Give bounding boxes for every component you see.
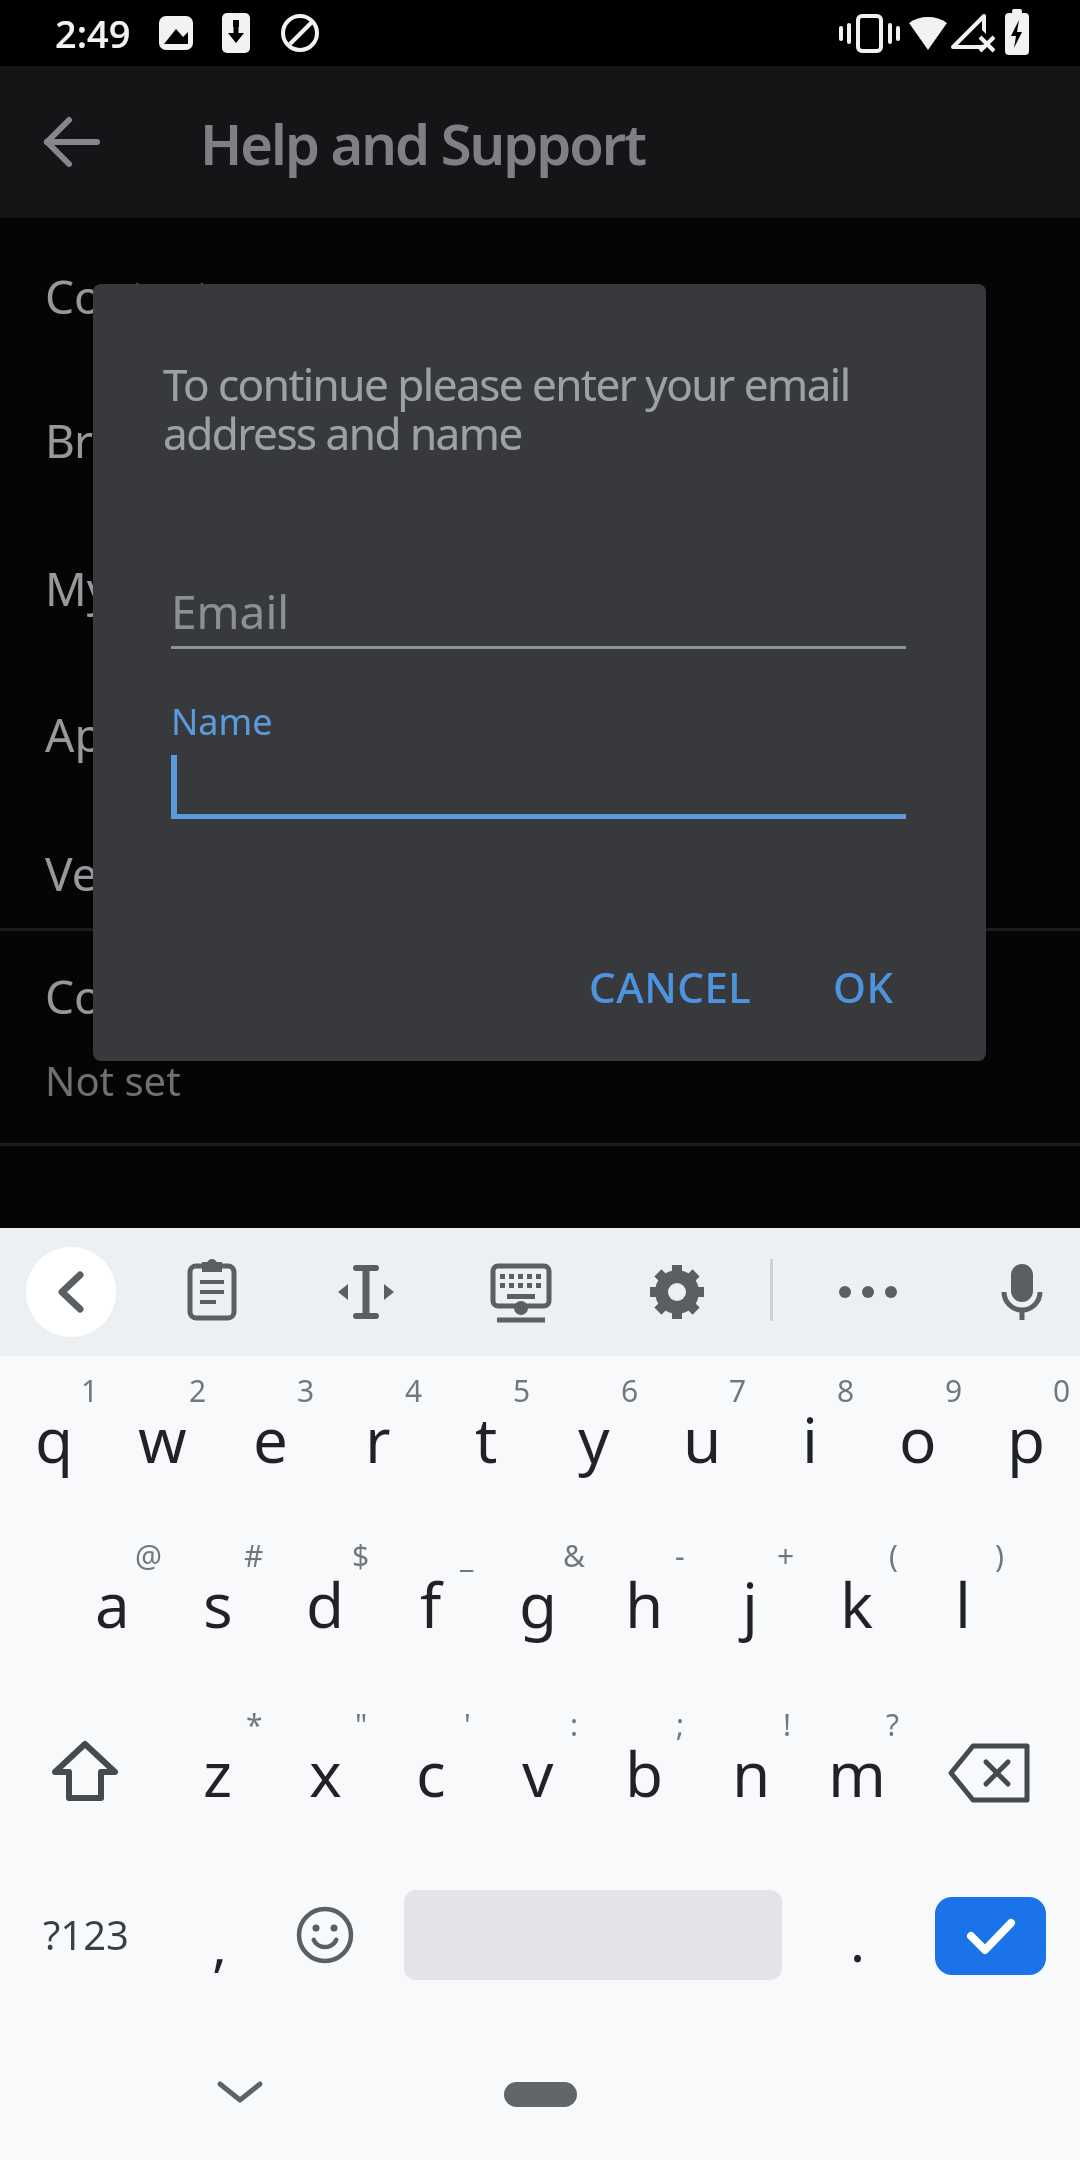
staticText: 3 [297, 1370, 315, 1411]
staticText: w [138, 1397, 187, 1481]
staticText: ? [886, 1704, 900, 1745]
button[interactable] [828, 1252, 908, 1332]
staticText: t [475, 1397, 498, 1481]
button[interactable]: s [164, 1521, 272, 1686]
button[interactable]: l [909, 1521, 1017, 1686]
staticText: h [625, 1562, 664, 1646]
staticText: v [522, 1731, 554, 1815]
staticText: m [828, 1731, 886, 1815]
staticText: # [244, 1535, 264, 1576]
staticText: CANCEL [589, 958, 752, 1015]
staticText: n [732, 1731, 771, 1815]
button[interactable]: e [216, 1356, 324, 1521]
staticText: u [683, 1397, 722, 1481]
staticText: 5 [513, 1370, 531, 1411]
staticText: 2 [189, 1370, 207, 1411]
button[interactable]: w [108, 1356, 216, 1521]
button[interactable]: x [271, 1690, 379, 1855]
button[interactable] [172, 1252, 252, 1332]
staticText: 8 [837, 1370, 855, 1411]
button[interactable] [33, 98, 121, 186]
button[interactable]: i [756, 1356, 864, 1521]
button[interactable] [285, 1895, 365, 1975]
button[interactable]: u [648, 1356, 756, 1521]
button[interactable]: r [324, 1356, 432, 1521]
staticText: q [35, 1397, 74, 1481]
button[interactable]: d [271, 1521, 379, 1686]
button[interactable] [935, 1897, 1046, 1975]
button[interactable] [982, 1252, 1062, 1332]
staticText: . [850, 1902, 866, 1978]
button[interactable]: t [432, 1356, 540, 1521]
button[interactable] [939, 1740, 1047, 1865]
staticText: & [563, 1535, 585, 1576]
staticText: 4 [405, 1370, 423, 1411]
staticText: " [355, 1704, 368, 1745]
button[interactable]: j [696, 1521, 804, 1686]
staticText: address and name [163, 403, 522, 463]
staticText: My tickets [45, 557, 262, 620]
button[interactable] [31, 1738, 139, 1863]
staticText: Browse help topics [45, 409, 434, 472]
staticText: 0 [1053, 1370, 1071, 1411]
staticText: Country [45, 965, 218, 1028]
button[interactable]: m [803, 1690, 911, 1855]
button[interactable]: c [377, 1690, 485, 1855]
button[interactable]: a [58, 1521, 166, 1686]
staticText: 1 [81, 1370, 99, 1411]
button[interactable]: q [0, 1356, 108, 1521]
staticText: : [570, 1704, 579, 1745]
button[interactable]: OK [798, 934, 928, 1039]
staticText: o [899, 1397, 937, 1481]
button[interactable]: y [540, 1356, 648, 1521]
staticText: Help and Support [200, 105, 645, 181]
button[interactable]: f [377, 1521, 485, 1686]
staticText: d [306, 1562, 345, 1646]
staticText: l [955, 1562, 971, 1646]
button[interactable]: g [484, 1521, 592, 1686]
button[interactable]: v [484, 1690, 592, 1855]
button[interactable]: k [803, 1521, 911, 1686]
staticText: - [675, 1535, 685, 1576]
staticText: x [309, 1731, 342, 1815]
staticText: y [578, 1397, 610, 1481]
staticText: p [1007, 1397, 1046, 1481]
button[interactable]: z [164, 1690, 272, 1855]
button[interactable] [326, 1252, 406, 1332]
staticText: a [95, 1562, 130, 1646]
staticText: @ [135, 1535, 162, 1576]
staticText: ! [783, 1704, 792, 1745]
button[interactable]: CANCEL [573, 934, 768, 1039]
staticText: ' [464, 1704, 471, 1745]
staticText: * [246, 1704, 263, 1745]
button[interactable]: b [590, 1690, 698, 1855]
staticText: Email [171, 580, 290, 643]
staticText: Version [45, 842, 207, 905]
button[interactable] [481, 1252, 561, 1332]
staticText: _ [460, 1535, 474, 1576]
staticText: 9 [945, 1370, 963, 1411]
staticText: ) [995, 1535, 1004, 1576]
button[interactable]: n [697, 1690, 805, 1855]
button[interactable]: ?123 [16, 1884, 156, 1984]
staticText: App version [45, 703, 302, 766]
staticText: 2:49 [55, 7, 131, 59]
button[interactable]: o [864, 1356, 972, 1521]
button[interactable] [26, 1247, 116, 1337]
button[interactable]: h [590, 1521, 698, 1686]
button[interactable] [504, 2082, 577, 2107]
staticText: f [420, 1562, 442, 1646]
staticText: s [203, 1562, 233, 1646]
staticText: z [203, 1731, 233, 1815]
staticText: r [365, 1397, 391, 1481]
button[interactable] [637, 1252, 717, 1332]
staticText: k [840, 1562, 874, 1646]
staticText: OK [833, 958, 894, 1015]
staticText: 6 [621, 1370, 639, 1411]
staticText: b [625, 1731, 664, 1815]
staticText: , [212, 1906, 228, 1982]
button[interactable]: p [972, 1356, 1080, 1521]
staticText: c [416, 1731, 446, 1815]
staticText: $ [352, 1535, 370, 1576]
